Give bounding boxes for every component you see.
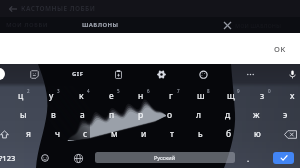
button[interactable]: з [247,87,277,105]
staticText: ж [253,109,260,121]
button[interactable]: т [157,125,186,143]
staticText: о [167,109,173,121]
button[interactable]: ж [242,106,271,124]
staticText: и [141,128,147,140]
staticText: 9 [237,88,240,94]
button[interactable]: д [213,106,242,124]
staticText: с [83,128,88,140]
button[interactable]: Emoji [32,148,58,168]
staticText: г [169,90,173,102]
staticText: л [196,109,201,121]
button[interactable]: б [214,125,243,143]
staticText: п [109,109,115,121]
staticText: ч [55,128,61,140]
button[interactable]: я [14,125,43,143]
staticText: 2 [27,88,30,94]
button[interactable]: щ [216,87,246,105]
button[interactable]: Stickers [25,65,43,83]
staticText: ц [18,90,24,102]
button[interactable]: Themes [194,65,212,83]
button[interactable]: Русский [95,152,235,163]
button[interactable]: МОИ ЛОББИ [2,18,52,32]
staticText: б [226,128,232,140]
staticText: 8 [207,88,210,94]
button[interactable]: с [71,125,100,143]
button[interactable]: п [97,106,126,124]
staticText: OK [274,44,286,54]
staticText: м [111,128,118,140]
button[interactable]: к [66,87,96,105]
button[interactable]: . [236,148,260,168]
button[interactable]: Change language [65,148,91,168]
staticText: 3 [57,88,60,94]
staticText: 4 [87,88,90,94]
staticText: я [26,128,31,140]
button[interactable]: OK [269,40,291,58]
button[interactable]: Enter [268,148,298,168]
staticText: 5 [117,88,120,94]
staticText: ь [198,128,203,140]
button[interactable]: Google search [0,68,5,80]
button[interactable]: л [184,106,213,124]
button[interactable]: р [126,106,155,124]
staticText: GIF [72,70,84,78]
button[interactable]: Settings [152,65,170,83]
button[interactable]: ш [186,87,216,105]
button[interactable]: Voice input [283,65,300,83]
button[interactable]: в [39,106,68,124]
button[interactable]: ШАБЛОНЫ [78,18,123,32]
staticText: р [138,109,144,121]
button[interactable]: ь [186,125,215,143]
staticText: н [138,90,144,102]
staticText: МОИ ЛОББИ [6,21,48,29]
button[interactable]: Backspace [276,125,300,143]
button[interactable]: ч [43,125,72,143]
button[interactable]: Shift [0,125,18,143]
button[interactable]: More [241,65,259,83]
staticText: к [79,90,84,102]
staticText: в [51,109,56,121]
button[interactable]: х [277,87,300,105]
button[interactable]: Clipboard [109,65,127,83]
button[interactable]: о [155,106,184,124]
staticText: з [260,90,265,102]
staticText: ш [197,90,205,102]
button[interactable]: м [100,125,129,143]
button[interactable]: н [126,87,156,105]
button[interactable]: ю [243,125,272,143]
staticText: 0 [268,88,271,94]
staticText: щ [227,90,235,102]
button[interactable]: а [68,106,97,124]
staticText: т [170,128,174,140]
staticText: е [109,90,114,102]
button[interactable]: ?123 [0,148,22,168]
staticText: у [49,90,54,102]
staticText: 6 [147,88,150,94]
staticText: х [290,90,295,102]
button[interactable]: ы [9,106,38,124]
button[interactable]: GIF [68,68,88,80]
button[interactable]: у [36,87,66,105]
staticText: ШАБЛОНЫ [82,21,119,29]
button[interactable]: г [156,87,186,105]
staticText: д [225,109,231,121]
staticText: КАСТОМНЫЕ ЛОББИ [21,4,96,13]
button[interactable]: Close [219,17,235,33]
button[interactable]: э [271,106,300,124]
button[interactable]: ц [6,87,36,105]
button[interactable]: е [96,87,126,105]
staticText: а [80,109,85,121]
button[interactable]: и [129,125,158,143]
staticText: Русский [154,154,176,161]
staticText: ю [254,128,261,140]
button[interactable]: Back [6,2,19,15]
staticText: ы [20,109,27,121]
staticText: ?123 [0,153,16,163]
staticText: э [283,109,288,121]
staticText: . [247,153,250,164]
staticText: 7 [177,88,180,94]
